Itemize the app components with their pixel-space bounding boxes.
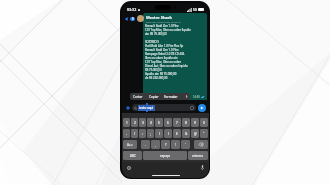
staticText: -	[126, 132, 127, 136]
staticText: 8	[185, 121, 187, 125]
staticText: 5	[158, 121, 160, 125]
staticText: 0km ou sobre liquido ate	[145, 56, 178, 60]
staticText: liquido ate R$ 75.000,00	[145, 72, 177, 76]
staticText: ate R$ 75.000,00	[145, 32, 167, 36]
button[interactable]: Back	[124, 15, 130, 23]
button[interactable]: espaço	[143, 151, 187, 160]
staticText: ,	[155, 143, 156, 147]
staticText: Diesel Aut, 0km ou sobre liquido	[145, 64, 188, 68]
button[interactable]: !	[171, 140, 180, 149]
button[interactable]: Backspace	[194, 140, 208, 149]
staticText: SORTEIO 5	[145, 40, 160, 44]
button[interactable]: ?	[161, 140, 170, 149]
staticText: Rampage Rebel 2.0 TB CD 4X4	[145, 52, 185, 56]
staticText: 2	[134, 121, 136, 125]
staticText: R$ 75.000,00	[145, 68, 162, 72]
button[interactable]: Emoji	[127, 166, 131, 170]
button[interactable]: Copiar	[149, 95, 159, 99]
button[interactable]: Voice input	[201, 165, 204, 170]
button[interactable]: )	[164, 129, 172, 138]
staticText: Mestre Shark	[146, 15, 172, 20]
other: Search	[134, 107, 137, 110]
button[interactable]: Send	[198, 104, 206, 112]
staticText: &	[185, 132, 188, 136]
staticText: 4	[150, 121, 152, 125]
button[interactable]: Contact photo	[137, 15, 144, 22]
staticText: )	[168, 132, 169, 136]
button[interactable]: 6	[164, 118, 172, 127]
staticText: Renault Kwid Zen 1.0 Flex	[145, 48, 179, 52]
staticText: ;	[150, 132, 151, 136]
staticText: 12V Top Mec, 0km ou sobre	[145, 60, 182, 64]
staticText: 0	[203, 121, 205, 125]
staticText: texto aqui	[139, 106, 154, 110]
other: Sticker	[190, 106, 194, 110]
staticText: ?	[165, 143, 167, 147]
button[interactable]: 9	[130, 17, 135, 21]
button[interactable]: @	[191, 129, 199, 138]
staticText: 12V Top Mec, 0km ou sobre liquido	[145, 28, 191, 32]
button[interactable]: '	[181, 140, 190, 149]
staticText: $	[176, 132, 178, 136]
staticText: !	[175, 143, 176, 147]
staticText: 5G	[193, 8, 197, 12]
button[interactable]: :	[139, 129, 146, 138]
button[interactable]: 8	[182, 118, 190, 127]
staticText: /	[134, 132, 136, 136]
button[interactable]: .	[141, 140, 150, 149]
button[interactable]: More options	[184, 93, 188, 100]
staticText: 9	[132, 17, 134, 21]
staticText: de R$ 240.000,00	[145, 76, 168, 80]
button[interactable]: Formatar	[164, 95, 178, 99]
button[interactable]: -	[123, 129, 130, 138]
staticText: "	[203, 132, 205, 136]
staticText: (	[159, 132, 160, 136]
button[interactable]: Attach	[125, 105, 131, 111]
button[interactable]: ,	[151, 140, 160, 149]
button[interactable]: 5	[155, 118, 163, 127]
staticText: Fiat Mobi Like 1.0 Fire Flex 5p	[145, 44, 184, 48]
staticText: #+=	[127, 143, 133, 147]
button[interactable]: 0	[200, 118, 208, 127]
button[interactable]: 3	[139, 118, 146, 127]
staticText: ABC	[130, 154, 136, 158]
staticText: visto por ultimo hoje as 03:10	[146, 20, 181, 23]
staticText: 7	[176, 121, 178, 125]
staticText: @	[194, 132, 197, 136]
button[interactable]: #+=	[123, 140, 137, 149]
button[interactable]: 1	[123, 118, 130, 127]
button[interactable]: &	[182, 129, 190, 138]
button[interactable]: 2	[131, 118, 138, 127]
staticText: 3	[142, 121, 144, 125]
button[interactable]: "	[200, 129, 208, 138]
button[interactable]: $	[173, 129, 181, 138]
button[interactable]: 4	[147, 118, 154, 127]
staticText: '	[185, 143, 186, 147]
staticText: Renault Kwid Zen 1.0 Flex	[145, 24, 179, 28]
staticText: 03:32	[127, 7, 137, 12]
button[interactable]: /	[131, 129, 138, 138]
button[interactable]: ABC	[123, 151, 142, 160]
staticText: Cortar	[133, 95, 143, 99]
staticText: 9	[194, 121, 196, 125]
staticText: 6	[167, 121, 169, 125]
staticText: retorno	[192, 154, 204, 158]
staticText: :	[142, 132, 143, 136]
button[interactable]: 7	[173, 118, 181, 127]
staticText: espaço	[160, 154, 171, 158]
button[interactable]: 9	[191, 118, 199, 127]
staticText: Formatar	[164, 95, 178, 99]
staticText: Copiar	[149, 95, 159, 99]
button[interactable]: ;	[147, 129, 154, 138]
staticText: .	[145, 143, 146, 147]
staticText: 14:56	[193, 95, 200, 99]
button[interactable]: (	[155, 129, 163, 138]
button[interactable]: Cortar	[133, 95, 143, 99]
staticText: 1	[126, 121, 128, 125]
button[interactable]: retorno	[188, 151, 208, 160]
